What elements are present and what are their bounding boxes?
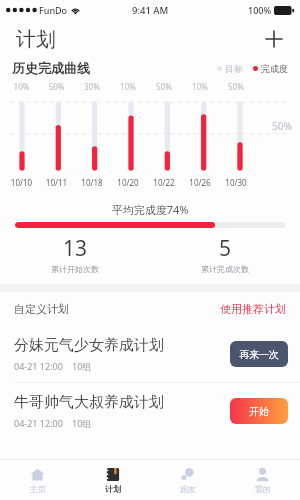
staticText: 13 (63, 234, 88, 263)
staticText: 10/10 (4, 177, 39, 188)
staticText: 50% (146, 81, 182, 92)
staticText: 04-21 12:00 (14, 417, 63, 429)
staticText: 10/26 (182, 177, 218, 188)
staticText: 10组 (72, 360, 92, 372)
staticText: 10% (182, 81, 218, 92)
staticText: 开始 (249, 405, 269, 418)
staticText: 跑友 (180, 484, 196, 494)
staticText: 累计完成次数 (201, 264, 249, 274)
staticText: 50% (272, 119, 292, 133)
staticText: 9:41 AM (132, 4, 169, 17)
staticText: 10/30 (218, 177, 254, 188)
staticText: 完成度 (261, 63, 288, 74)
staticText: 50% (39, 81, 74, 92)
button[interactable]: 开始 (230, 398, 288, 424)
staticText: 累计开始次数 (51, 264, 99, 274)
staticText: 10% (110, 81, 146, 92)
staticText: 10/18 (74, 177, 110, 188)
button[interactable]: 牛哥帅气大叔养成计划 (0, 383, 300, 439)
staticText: 平均完成度74% (0, 202, 300, 217)
staticText: 主页 (30, 484, 46, 494)
staticText: 10/11 (39, 177, 74, 188)
staticText: 10/20 (110, 177, 146, 188)
staticText: 04-21 12:00 (14, 360, 63, 372)
staticText: 30% (74, 81, 110, 92)
staticText: 计划 (16, 27, 56, 52)
staticText: 再来一次 (239, 348, 279, 361)
staticText: 分妹元气少女养成计划 (14, 336, 164, 355)
staticText: 100% (248, 4, 272, 16)
staticText: 计划 (105, 484, 121, 494)
staticText: 使用推荐计划 (220, 302, 286, 316)
staticText: 我的 (255, 484, 271, 494)
staticText: 目标 (225, 63, 243, 74)
button[interactable]: 跑友 (150, 460, 225, 500)
staticText: 自定义计划 (14, 302, 69, 316)
staticText: 10/22 (146, 177, 182, 188)
staticText: 10% (4, 81, 39, 92)
staticText: FunDo (39, 4, 68, 16)
button[interactable]: 再来一次 (230, 341, 288, 367)
button[interactable]: 使用推荐计划 (220, 302, 286, 316)
button[interactable]: 分妹元气少女养成计划 (0, 326, 300, 382)
button[interactable]: Add plan (260, 25, 288, 53)
staticText: 牛哥帅气大叔养成计划 (14, 393, 164, 412)
button[interactable]: 我的 (225, 460, 300, 500)
staticText: 10组 (72, 417, 92, 429)
staticText: 50% (218, 81, 254, 92)
button[interactable]: 计划 (75, 460, 150, 500)
button[interactable]: 主页 (0, 460, 75, 500)
staticText: 5 (219, 234, 232, 263)
staticText: 历史完成曲线 (12, 60, 90, 76)
